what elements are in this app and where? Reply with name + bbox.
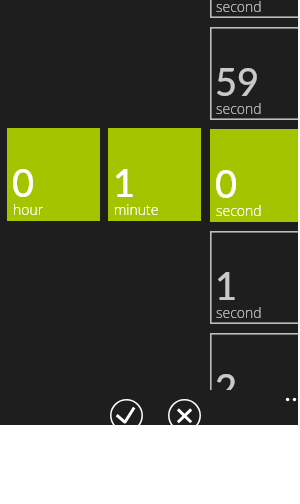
- button[interactable]: 59: [210, 27, 300, 120]
- staticText: second: [216, 303, 262, 322]
- button[interactable]: Done: [110, 399, 143, 432]
- button[interactable]: 2: [210, 333, 300, 390]
- staticText: 0: [215, 160, 238, 206]
- staticText: 58: [215, 0, 260, 2]
- staticText: second: [216, 99, 262, 118]
- button[interactable]: 0: [7, 128, 100, 221]
- button[interactable]: Cancel: [168, 399, 201, 432]
- button[interactable]: 1: [210, 231, 300, 324]
- button[interactable]: 1: [108, 128, 201, 221]
- button[interactable]: 58: [210, 0, 300, 18]
- button[interactable]: More options: [280, 392, 300, 414]
- staticText: 2: [215, 364, 238, 390]
- staticText: hour: [13, 200, 44, 219]
- button[interactable]: 0: [210, 129, 300, 222]
- staticText: 59: [215, 58, 260, 104]
- staticText: second: [216, 0, 262, 16]
- staticText: 1: [113, 159, 136, 205]
- staticText: second: [216, 201, 262, 220]
- staticText: 1: [215, 262, 238, 308]
- staticText: 0: [12, 159, 35, 205]
- staticText: minute: [114, 200, 159, 219]
